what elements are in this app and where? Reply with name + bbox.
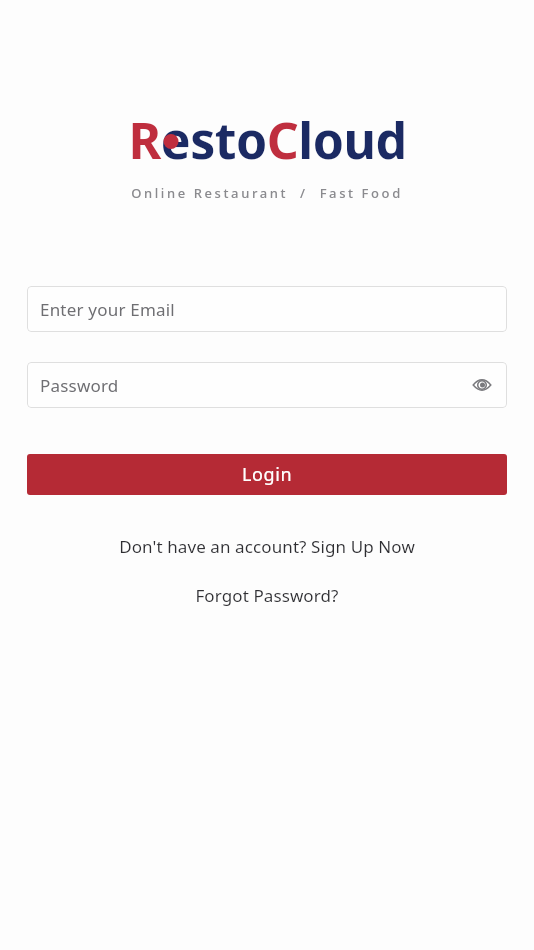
staticText: Enter your Email <box>40 298 495 321</box>
staticText: RestoCloud <box>128 106 407 174</box>
button[interactable]: Show password <box>469 372 495 398</box>
button[interactable]: Forgot Password? <box>187 582 347 609</box>
staticText: Forgot Password? <box>195 584 339 607</box>
staticText: Don't have an account? Sign Up Now <box>119 535 415 558</box>
button[interactable]: Don't have an account? Sign Up Now <box>111 533 423 560</box>
button[interactable]: Enter your Email <box>27 286 507 332</box>
staticText: Login <box>242 462 293 487</box>
button[interactable]: Login <box>27 454 507 495</box>
staticText: Online Restaurant / Fast Food <box>131 184 403 202</box>
button[interactable]: Password <box>27 362 507 408</box>
staticText: Password <box>40 374 469 397</box>
